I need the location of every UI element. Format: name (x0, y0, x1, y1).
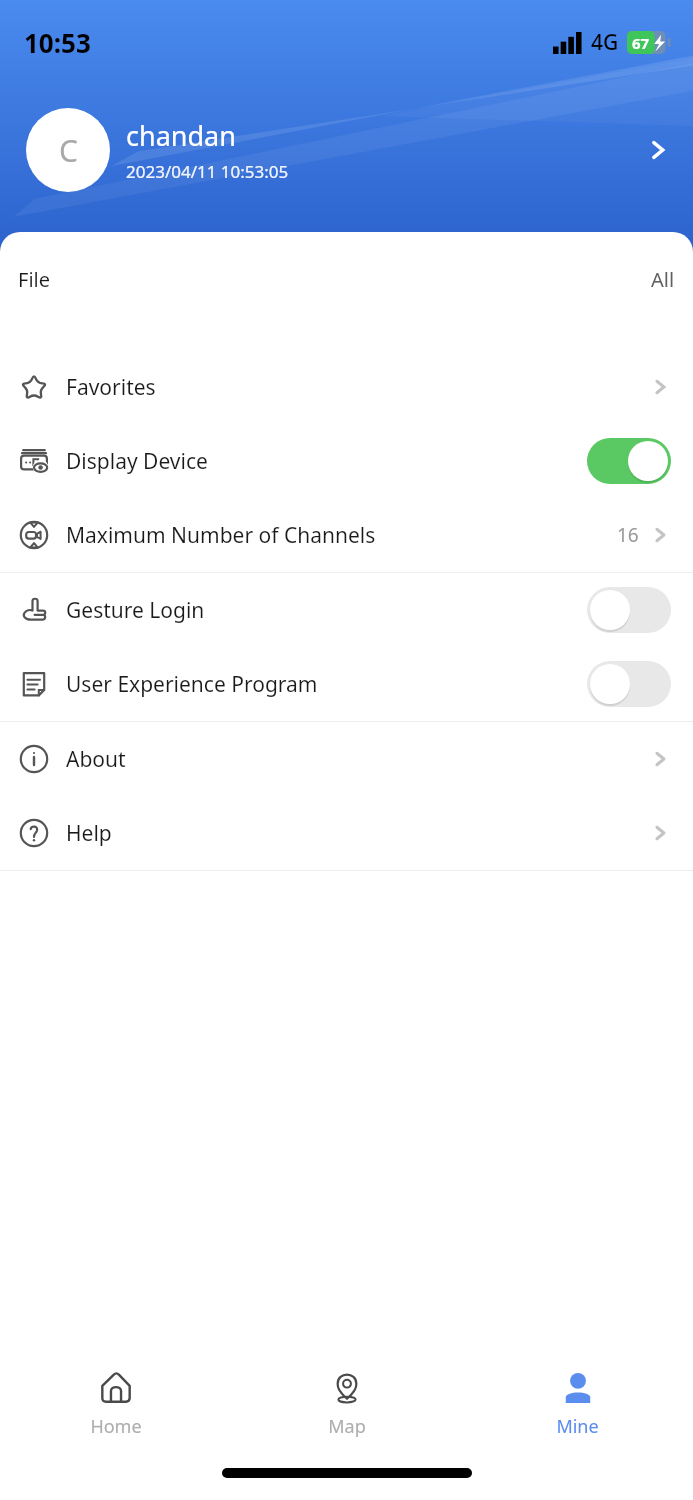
staticText: chandan (126, 117, 236, 154)
button[interactable]: Home (0, 1360, 231, 1447)
button[interactable]: All (651, 232, 693, 293)
staticText: 10:53 (24, 25, 91, 60)
staticText: User Experience Program (66, 670, 318, 699)
button[interactable]: C (0, 100, 693, 200)
button[interactable]: User Experience Program (0, 647, 693, 721)
button[interactable]: Favorites (0, 350, 693, 424)
staticText: Map (328, 1414, 366, 1439)
staticText: 2023/04/11 10:53:05 (126, 160, 289, 183)
staticText: 16 (617, 522, 639, 548)
staticText: Mine (556, 1414, 599, 1439)
staticText: Display Device (66, 447, 208, 476)
staticText: Gesture Login (66, 596, 205, 625)
button[interactable]: Help (0, 796, 693, 870)
button[interactable]: Map (231, 1360, 462, 1447)
staticText: 4G (591, 28, 619, 57)
staticText: About (66, 745, 126, 774)
staticText: Maximum Number of Channels (66, 521, 376, 550)
button[interactable]: Toggle off (587, 661, 671, 707)
staticText: 67 (632, 33, 650, 53)
button[interactable]: Toggle off (587, 587, 671, 633)
button[interactable]: Toggle on (587, 438, 671, 484)
button[interactable]: Mine (462, 1360, 693, 1447)
button[interactable]: Gesture Login (0, 573, 693, 647)
staticText: Home (90, 1414, 142, 1439)
staticText: Help (66, 819, 112, 848)
staticText: File (18, 266, 50, 293)
staticText: C (59, 130, 78, 171)
button[interactable]: Display Device (0, 424, 693, 498)
button[interactable]: About (0, 722, 693, 796)
staticText: All (651, 266, 675, 293)
staticText: Favorites (66, 373, 156, 402)
button[interactable]: Maximum Number of Channels (0, 498, 693, 572)
